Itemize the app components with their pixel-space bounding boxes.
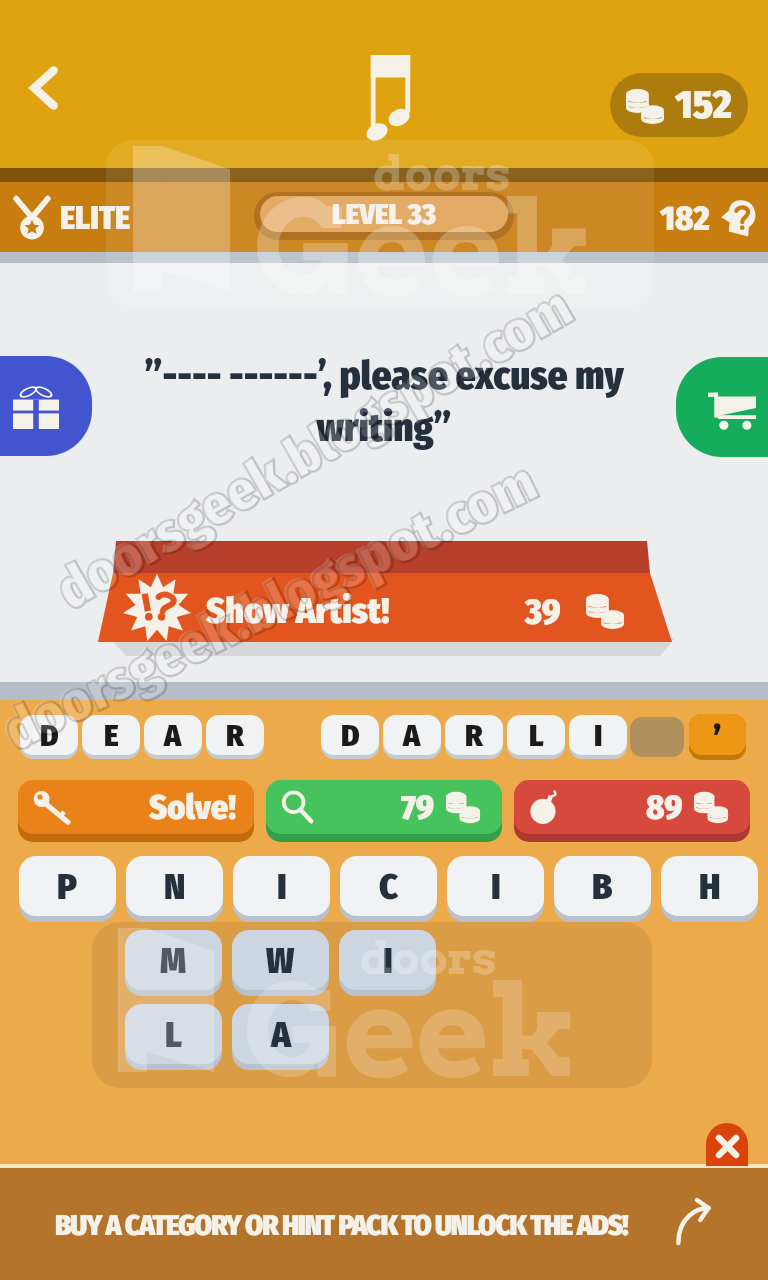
- button[interactable]: Hint: [266, 780, 502, 842]
- button[interactable]: I: [447, 856, 544, 922]
- staticText: R: [226, 717, 244, 754]
- button[interactable]: C: [340, 856, 437, 922]
- staticText: D: [341, 717, 360, 754]
- button[interactable]: Back: [8, 52, 80, 124]
- button[interactable]: I: [339, 930, 436, 996]
- button[interactable]: [630, 717, 684, 757]
- button[interactable]: I: [569, 715, 627, 759]
- button[interactable]: ’: [689, 714, 746, 755]
- staticText: P: [57, 865, 78, 908]
- button[interactable]: Show Artist!: [90, 530, 690, 660]
- staticText: 152: [675, 81, 732, 129]
- staticText: A: [271, 1013, 291, 1056]
- staticText: doorsgeek.blogspot.com: [42, 273, 582, 623]
- button[interactable]: Open store: [664, 1192, 728, 1256]
- button[interactable]: W: [232, 930, 329, 996]
- staticText: N: [164, 865, 186, 908]
- staticText: I: [594, 717, 603, 754]
- button[interactable]: 182: [660, 190, 759, 246]
- staticText: W: [266, 939, 295, 982]
- button[interactable]: 152: [610, 73, 748, 137]
- staticText: doorsgeek.blogspot.com: [0, 448, 546, 764]
- button[interactable]: R: [445, 715, 503, 759]
- staticText: 89: [646, 787, 683, 828]
- staticText: LEVEL 33: [332, 197, 437, 232]
- staticText: Solve!: [149, 787, 236, 828]
- button[interactable]: Close ad: [706, 1123, 748, 1166]
- button[interactable]: D: [321, 715, 379, 759]
- staticText: L: [529, 717, 544, 754]
- staticText: doorsgeek.blogspot.com: [45, 274, 585, 624]
- staticText: D: [40, 717, 59, 754]
- button[interactable]: I: [233, 856, 330, 922]
- staticText: ’: [713, 717, 722, 755]
- staticText: A: [403, 717, 421, 754]
- button[interactable]: Solve: [18, 780, 254, 842]
- staticText: 39: [525, 591, 561, 633]
- button[interactable]: L: [125, 1004, 222, 1070]
- staticText: BUY A CATEGORY OR HINT PACK TO UNLOCK TH…: [55, 1208, 628, 1243]
- button[interactable]: LEVEL 33: [254, 192, 514, 240]
- button[interactable]: ELITE: [10, 190, 131, 246]
- button[interactable]: E: [82, 715, 140, 759]
- button[interactable]: A: [144, 715, 202, 759]
- button[interactable]: M: [125, 930, 222, 996]
- staticText: R: [465, 717, 483, 754]
- button[interactable]: Shop: [676, 357, 768, 457]
- button[interactable]: A: [383, 715, 441, 759]
- staticText: 79: [401, 787, 435, 828]
- staticText: E: [104, 717, 119, 754]
- staticText: ”---- ------’, please excuse my writing”: [104, 353, 664, 451]
- button[interactable]: A: [232, 1004, 329, 1070]
- button[interactable]: Bomb: [514, 780, 750, 842]
- staticText: Geek: [253, 171, 595, 326]
- button[interactable]: P: [19, 856, 116, 922]
- staticText: Geek: [243, 955, 579, 1107]
- staticText: L: [165, 1013, 183, 1056]
- staticText: doors: [360, 930, 498, 986]
- button[interactable]: D: [20, 715, 78, 759]
- staticText: Show Artist!: [206, 589, 390, 632]
- staticText: 182: [660, 198, 710, 239]
- staticText: B: [592, 865, 613, 908]
- staticText: H: [699, 865, 721, 908]
- staticText: doors: [373, 146, 511, 202]
- staticText: I: [277, 865, 287, 908]
- staticText: doorsgeek.blogspot.com: [0, 448, 548, 765]
- staticText: C: [379, 865, 399, 908]
- button[interactable]: B: [554, 856, 651, 922]
- staticText: M: [160, 939, 187, 982]
- button[interactable]: N: [126, 856, 223, 922]
- staticText: ELITE: [60, 199, 131, 237]
- button[interactable]: L: [507, 715, 565, 759]
- staticText: I: [491, 865, 501, 908]
- button[interactable]: Free gift: [0, 356, 92, 456]
- button[interactable]: H: [661, 856, 758, 922]
- staticText: A: [164, 717, 182, 754]
- button[interactable]: R: [206, 715, 264, 759]
- staticText: I: [383, 939, 393, 982]
